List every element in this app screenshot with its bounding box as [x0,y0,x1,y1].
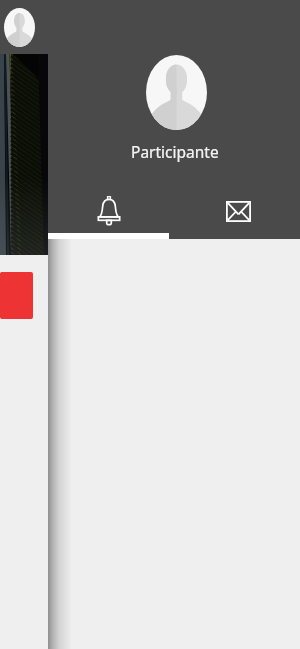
staticText: Participante [131,141,219,162]
button[interactable]: Notifications [48,187,169,235]
button[interactable] [0,272,33,319]
button[interactable]: Messages [178,187,299,235]
